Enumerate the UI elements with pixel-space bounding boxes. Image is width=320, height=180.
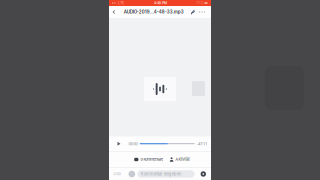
button[interactable]: Attachments	[188, 6, 197, 18]
staticText: 0:00	[113, 172, 120, 176]
staticText: -47:11	[197, 141, 207, 146]
staticText: 77%	[196, 1, 203, 5]
staticText: Aktivität	[176, 157, 190, 162]
staticText: AUDIO-2019…4-48-33.mp3	[124, 9, 184, 15]
button[interactable]: More options	[197, 6, 206, 18]
staticText: LTE	[118, 1, 124, 5]
staticText: 4:48 PM	[154, 1, 167, 5]
button[interactable]: Aktivität	[169, 154, 190, 165]
button[interactable]: 0 Kommentare	[134, 154, 163, 165]
staticText: 00:00	[128, 141, 137, 146]
staticText: Kommentar eingeben	[141, 171, 181, 176]
button[interactable]: Send comment	[201, 171, 206, 177]
button[interactable]: Play	[113, 136, 124, 151]
staticText: 0 Kommentare	[140, 157, 163, 162]
button[interactable]: Back	[109, 6, 119, 18]
button[interactable]: Kommentar eingeben	[137, 170, 195, 178]
